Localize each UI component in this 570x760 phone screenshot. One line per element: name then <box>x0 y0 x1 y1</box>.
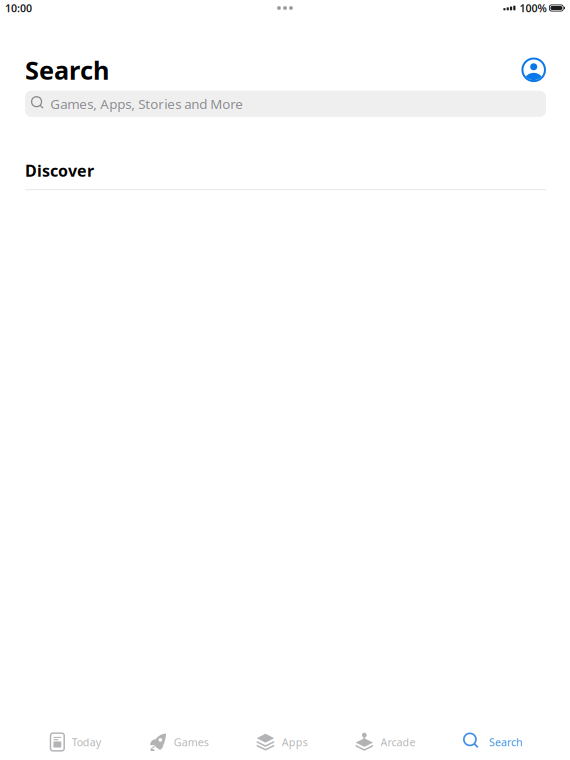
staticText: Today <box>72 735 101 749</box>
staticText: Search <box>489 735 523 749</box>
button[interactable]: Arcade <box>355 729 415 755</box>
staticText: Discover <box>25 160 94 181</box>
staticText: Arcade <box>380 735 415 749</box>
button[interactable]: Games, Apps, Stories and More <box>25 91 546 117</box>
staticText: Apps <box>282 735 308 749</box>
button[interactable]: Games <box>148 729 209 755</box>
staticText: Search <box>25 53 109 87</box>
staticText: 100% <box>519 1 546 15</box>
staticText: 10:00 <box>5 1 32 15</box>
staticText: Games, Apps, Stories and More <box>50 95 243 113</box>
button[interactable]: Account <box>521 57 546 82</box>
button[interactable]: Today <box>50 729 101 755</box>
button[interactable]: Search <box>463 729 523 755</box>
button[interactable]: Apps <box>256 729 308 755</box>
staticText: Games <box>174 735 209 749</box>
